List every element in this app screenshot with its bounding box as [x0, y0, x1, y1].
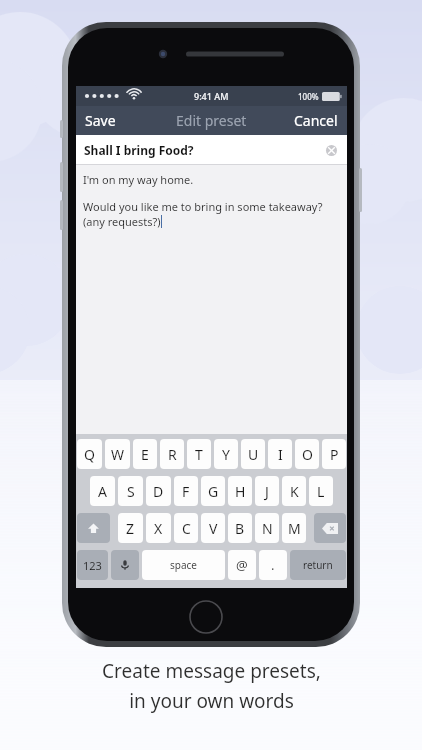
- staticText: in your own words: [129, 688, 294, 714]
- button[interactable]: H: [228, 476, 252, 506]
- staticText: X: [154, 519, 163, 538]
- button[interactable]: W: [105, 439, 130, 469]
- button[interactable]: F: [174, 476, 198, 506]
- staticText: space: [170, 558, 197, 572]
- button[interactable]: I: [268, 439, 292, 469]
- button[interactable]: D: [146, 476, 171, 506]
- button[interactable]: T: [187, 439, 211, 469]
- button[interactable]: N: [255, 513, 279, 543]
- staticText: V: [209, 519, 218, 538]
- button[interactable]: @: [228, 550, 256, 580]
- button[interactable]: space: [142, 550, 225, 580]
- staticText: return: [303, 558, 333, 572]
- button[interactable]: K: [282, 476, 306, 506]
- staticText: A: [98, 482, 107, 501]
- staticText: U: [248, 445, 259, 464]
- staticText: Save: [85, 111, 116, 130]
- button[interactable]: R: [160, 439, 184, 469]
- staticText: Z: [126, 519, 135, 538]
- button[interactable]: Dictate: [111, 550, 139, 580]
- staticText: D: [153, 482, 164, 501]
- staticText: L: [317, 482, 325, 501]
- staticText: P: [330, 445, 339, 464]
- staticText: M: [288, 519, 301, 538]
- button[interactable]: Z: [118, 513, 143, 543]
- button[interactable]: E: [133, 439, 157, 469]
- button[interactable]: A: [90, 476, 115, 506]
- button[interactable]: Backspace: [314, 513, 346, 543]
- staticText: Shall I bring Food?: [84, 142, 194, 158]
- staticText: Y: [222, 445, 230, 464]
- staticText: B: [235, 519, 245, 538]
- staticText: 9:41 AM: [194, 90, 229, 102]
- staticText: @: [236, 556, 248, 574]
- button[interactable]: V: [201, 513, 225, 543]
- button[interactable]: Shift: [77, 513, 110, 543]
- button[interactable]: Y: [214, 439, 238, 469]
- button[interactable]: O: [295, 439, 319, 469]
- button[interactable]: S: [118, 476, 143, 506]
- button[interactable]: Save: [76, 107, 125, 134]
- button[interactable]: B: [228, 513, 252, 543]
- button[interactable]: L: [309, 476, 333, 506]
- staticText: Cancel: [294, 111, 338, 130]
- staticText: 100%: [298, 91, 319, 102]
- button[interactable]: M: [282, 513, 306, 543]
- button[interactable]: G: [201, 476, 225, 506]
- staticText: I'm on my way home.: [83, 172, 194, 187]
- staticText: C: [182, 519, 191, 538]
- button[interactable]: Clear title: [321, 140, 341, 160]
- staticText: R: [168, 445, 177, 464]
- staticText: N: [262, 519, 273, 538]
- staticText: H: [235, 482, 246, 501]
- staticText: Create message presets,: [102, 658, 321, 684]
- button[interactable]: 123: [77, 550, 108, 580]
- staticText: Edit preset: [176, 111, 247, 130]
- button[interactable]: C: [174, 513, 198, 543]
- button[interactable]: Q: [77, 439, 102, 469]
- button[interactable]: Cancel: [285, 107, 347, 134]
- staticText: W: [111, 445, 125, 464]
- button[interactable]: P: [322, 439, 346, 469]
- staticText: (any requests?): [83, 214, 161, 229]
- staticText: E: [141, 445, 149, 464]
- staticText: Q: [84, 445, 95, 464]
- button[interactable]: U: [241, 439, 265, 469]
- staticText: Would you like me to bring in some takea…: [83, 199, 323, 214]
- button[interactable]: return: [290, 550, 346, 580]
- staticText: T: [195, 445, 203, 464]
- button[interactable]: X: [146, 513, 171, 543]
- staticText: F: [182, 482, 190, 501]
- staticText: O: [302, 445, 313, 464]
- staticText: S: [127, 482, 135, 501]
- staticText: .: [271, 556, 275, 574]
- staticText: K: [290, 482, 299, 501]
- button[interactable]: J: [255, 476, 279, 506]
- staticText: 123: [83, 558, 102, 573]
- staticText: J: [265, 482, 269, 501]
- staticText: G: [208, 482, 219, 501]
- button[interactable]: I'm on my way home.: [76, 165, 347, 434]
- button[interactable]: .: [259, 550, 287, 580]
- button[interactable]: Home: [187, 598, 225, 636]
- staticText: I: [278, 445, 283, 464]
